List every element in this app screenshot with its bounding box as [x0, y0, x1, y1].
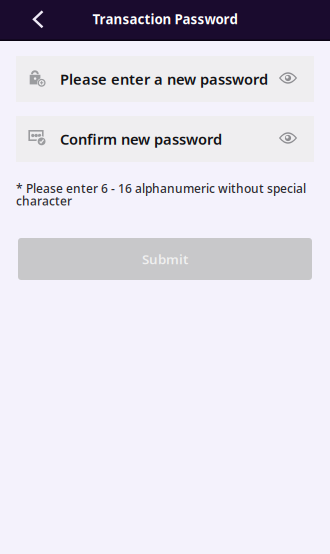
staticText: Confirm new password [60, 129, 222, 149]
staticText: character [16, 193, 72, 209]
button[interactable]: Back [0, 0, 44, 51]
button[interactable]: Show password [268, 56, 308, 102]
staticText: Please enter a new password [60, 69, 268, 89]
staticText: * Please enter 6 - 16 alphanumeric witho… [16, 180, 306, 196]
button[interactable]: Submit [18, 238, 312, 280]
button[interactable]: Show password [268, 116, 308, 162]
staticText: Submit [142, 250, 188, 268]
staticText: Transaction Password [92, 10, 237, 28]
